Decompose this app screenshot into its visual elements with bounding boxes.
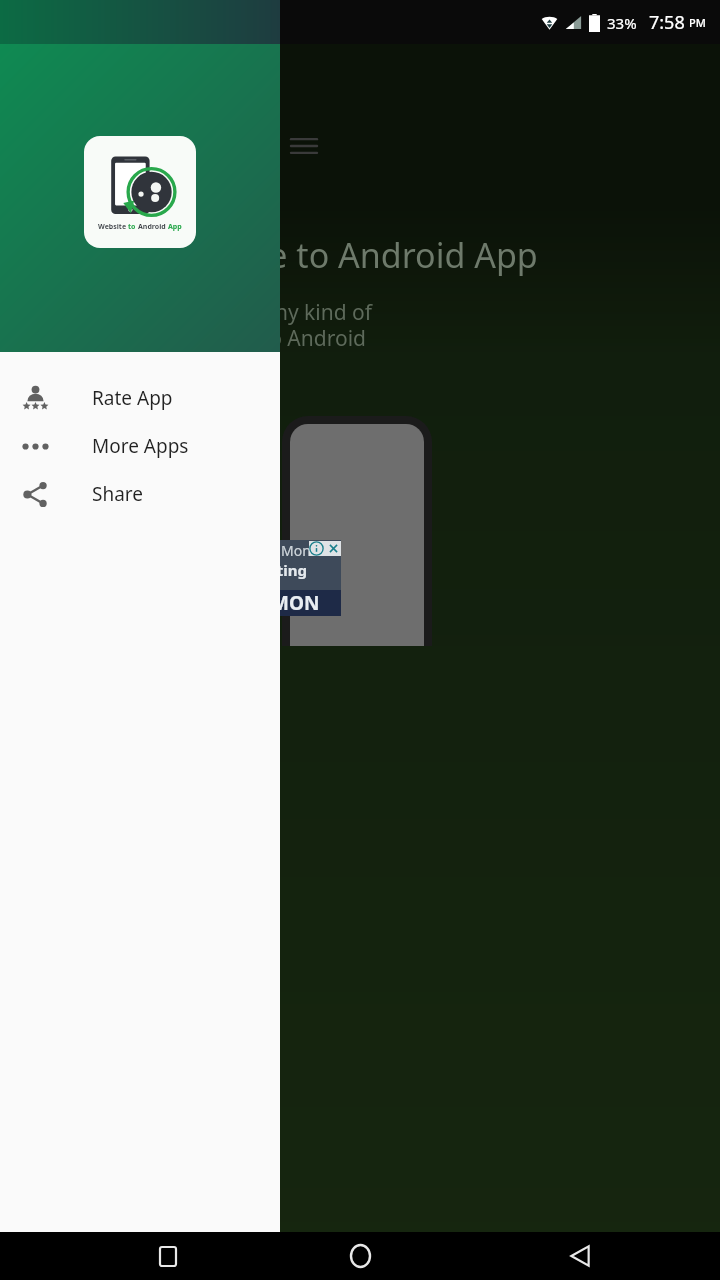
staticText: MONNIT. — [271, 590, 333, 616]
staticText: PM — [689, 15, 706, 30]
staticText: arting at $49 — [261, 560, 323, 580]
other: Close ad — [326, 541, 341, 556]
staticText: 33% — [607, 13, 637, 33]
button[interactable]: Recent apps — [140, 1232, 196, 1280]
staticText: Website to Android App — [160, 232, 538, 278]
staticText: Moni — [281, 541, 315, 560]
other: More Apps — [22, 433, 49, 460]
staticText: to — [128, 222, 138, 232]
staticText: More Apps — [92, 433, 189, 459]
button[interactable]: Share — [0, 470, 280, 518]
staticText: 7:58 — [649, 10, 685, 35]
other: Share — [22, 481, 49, 508]
button[interactable]: Home — [332, 1232, 388, 1280]
button[interactable]: Back — [552, 1232, 608, 1280]
staticText: Android — [138, 222, 168, 232]
button[interactable]: Open menu — [279, 127, 329, 165]
button[interactable]: Rate App — [0, 374, 280, 422]
staticText: website to Android — [180, 324, 366, 353]
staticText: Rate App — [92, 385, 173, 411]
button[interactable]: More Apps — [0, 422, 280, 470]
staticText: Website — [98, 222, 128, 232]
staticText: Share — [92, 481, 144, 507]
staticText: Convert any kind of — [180, 298, 373, 327]
other: Rate App — [22, 385, 49, 412]
staticText: App — [168, 222, 182, 232]
other: Ad info — [309, 541, 324, 556]
